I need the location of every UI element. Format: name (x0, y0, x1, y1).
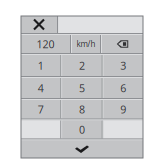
staticText: 8 (79, 102, 85, 116)
staticText: 4 (38, 81, 44, 95)
button[interactable]: Delete (102, 35, 143, 53)
staticText: 6 (120, 81, 126, 95)
staticText: 120 (36, 37, 54, 51)
button[interactable]: 5 (62, 78, 102, 98)
staticText: 7 (38, 102, 44, 116)
staticText: 2 (79, 58, 85, 73)
staticText: 5 (79, 81, 85, 95)
button[interactable]: 7 (21, 100, 60, 118)
button[interactable]: 2 (62, 55, 102, 76)
button[interactable]: Confirm (21, 140, 143, 158)
button[interactable]: 9 (104, 100, 143, 118)
staticText: km/h (76, 39, 95, 49)
staticText: 0 (79, 122, 85, 137)
button[interactable]: Close (21, 16, 57, 33)
staticText: 1 (38, 58, 44, 73)
button[interactable]: 3 (104, 55, 143, 76)
staticText: 9 (120, 102, 126, 116)
button[interactable]: 6 (104, 78, 143, 98)
button[interactable]: 0 (62, 120, 102, 138)
button[interactable]: 1 (21, 55, 60, 76)
button[interactable]: 4 (21, 78, 60, 98)
staticText: 3 (120, 58, 126, 73)
button[interactable]: 8 (62, 100, 102, 118)
